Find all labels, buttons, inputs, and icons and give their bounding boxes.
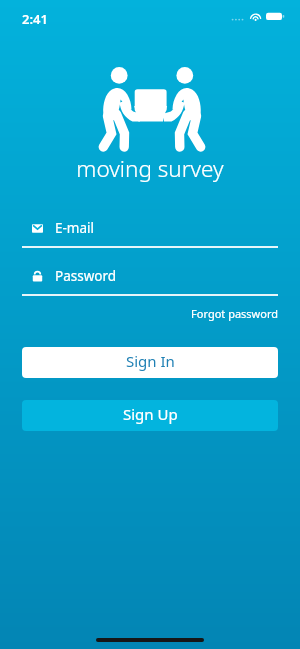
button[interactable]: Sign In xyxy=(22,347,278,378)
staticText: Password xyxy=(55,267,117,285)
button[interactable]: Forgot password xyxy=(0,306,278,321)
button[interactable]: Sign Up xyxy=(22,400,278,431)
staticText: 2:41 xyxy=(22,10,48,28)
button[interactable]: E-mail xyxy=(22,218,278,248)
button[interactable]: Password xyxy=(22,266,278,296)
staticText: E-mail xyxy=(55,219,95,237)
staticText: Sign Up xyxy=(123,404,178,424)
staticText: Sign In xyxy=(126,351,175,371)
staticText: moving survey xyxy=(0,153,300,184)
